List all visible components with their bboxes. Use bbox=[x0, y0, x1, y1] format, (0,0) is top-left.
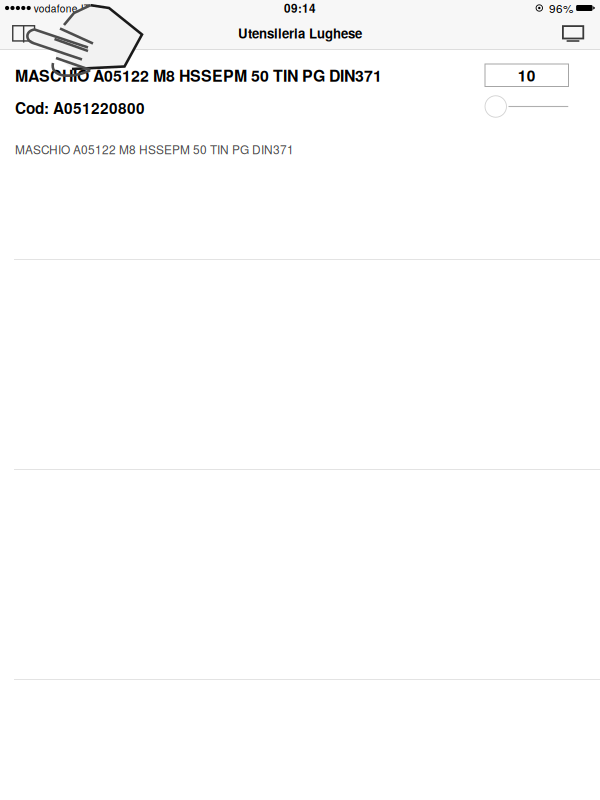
button[interactable]: Visualizza bbox=[549, 16, 600, 50]
staticText: 09:14 bbox=[284, 0, 316, 16]
staticText: MASCHIO A05122 M8 HSSEPM 50 TIN PG DIN37… bbox=[15, 64, 382, 87]
staticText: vodafone IT bbox=[31, 1, 90, 15]
button[interactable]: Regola quantità bbox=[485, 95, 584, 117]
staticText: Cod: A051220800 bbox=[15, 97, 145, 119]
staticText: 96% bbox=[543, 0, 576, 16]
button[interactable]: Catalogo bbox=[0, 16, 47, 50]
staticText: 10 bbox=[518, 64, 536, 86]
staticText: Utensileria Lughese bbox=[238, 23, 362, 42]
staticText: MASCHIO A05122 M8 HSSEPM 50 TIN PG DIN37… bbox=[15, 141, 294, 158]
button[interactable]: MASCHIO A05122 M8 HSSEPM 50 TIN PG DIN37… bbox=[0, 50, 600, 260]
button[interactable]: Quantità bbox=[485, 64, 568, 86]
